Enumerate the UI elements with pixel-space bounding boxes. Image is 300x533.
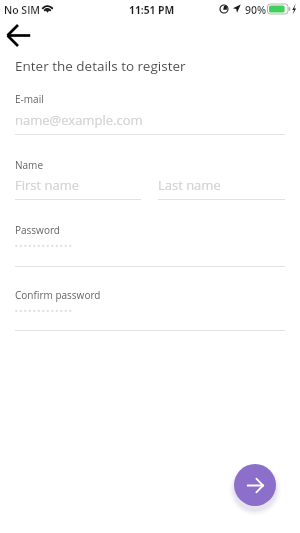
button[interactable]: Back [0,21,37,50]
staticText: Last name [158,176,221,194]
staticText: name@example.com [15,111,143,129]
staticText: No SIM [4,3,41,17]
staticText: 11:51 PM [129,3,175,17]
button[interactable]: Continue [234,464,276,506]
staticText: Password [15,223,60,237]
staticText: First name [15,176,80,194]
staticText: E-mail [15,92,44,106]
staticText: 90% [245,3,267,17]
staticText: Name [15,158,44,172]
staticText: Enter the details to register [15,57,186,75]
staticText: Confirm password [15,288,101,302]
